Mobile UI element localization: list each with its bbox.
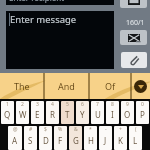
button[interactable]: 9	[120, 101, 135, 124]
button[interactable]: Choose contact	[120, 0, 147, 8]
button[interactable]: 8	[105, 101, 120, 124]
button[interactable]: (	[128, 126, 143, 150]
staticText: F	[58, 135, 63, 146]
button[interactable]: +	[113, 126, 128, 150]
staticText: A	[12, 135, 18, 146]
button[interactable]: #	[23, 126, 38, 150]
staticText: *	[89, 126, 92, 133]
button[interactable]: More suggestions	[131, 73, 150, 99]
staticText: The	[14, 80, 30, 92]
staticText: @	[13, 126, 18, 133]
staticText: $	[44, 126, 47, 133]
button[interactable]: &	[68, 126, 83, 150]
staticText: 160/1	[126, 18, 145, 28]
staticText: H	[88, 135, 94, 146]
staticText: 0	[141, 101, 144, 108]
staticText: S	[28, 135, 33, 146]
button[interactable]: Enter message	[6, 11, 114, 69]
staticText: 7	[96, 101, 99, 108]
staticText: O	[124, 109, 131, 120]
button[interactable]: Of	[89, 73, 131, 99]
button[interactable]: @	[7, 126, 23, 150]
staticText: Of	[105, 80, 116, 92]
staticText: U	[95, 109, 101, 120]
staticText: L	[133, 135, 138, 146]
button[interactable]: 5	[60, 101, 75, 124]
staticText: G	[73, 135, 79, 146]
staticText: T	[65, 109, 70, 120]
staticText: 2	[21, 101, 24, 108]
staticText: 1	[6, 101, 9, 108]
button[interactable]: Attach file	[121, 52, 147, 68]
button[interactable]: -	[98, 126, 113, 150]
staticText: Y	[80, 109, 85, 120]
button[interactable]: $	[38, 126, 53, 150]
button[interactable]: *	[83, 126, 98, 150]
staticText: 3	[36, 101, 39, 108]
staticText: +	[119, 126, 122, 133]
staticText: And	[58, 80, 75, 92]
staticText: Enter recipient	[9, 0, 65, 3]
staticText: (	[135, 126, 137, 133]
button[interactable]: And	[44, 73, 89, 99]
staticText: &	[74, 126, 78, 133]
staticText: 9	[126, 101, 129, 108]
staticText: #	[29, 126, 33, 133]
button[interactable]: 6	[75, 101, 90, 124]
button[interactable]: 2	[15, 101, 30, 124]
staticText: %	[58, 126, 63, 133]
button[interactable]: 0	[135, 101, 150, 124]
staticText: E	[35, 109, 40, 120]
staticText: K	[118, 135, 123, 146]
button[interactable]: Enter recipient	[6, 0, 114, 5]
staticText: P	[140, 109, 145, 120]
button[interactable]: 4	[45, 101, 60, 124]
staticText: D	[43, 135, 49, 146]
staticText: I	[111, 109, 114, 120]
button[interactable]: 1	[0, 101, 15, 124]
button[interactable]: 7	[90, 101, 105, 124]
staticText: Enter message	[10, 13, 77, 26]
button[interactable]: The	[0, 73, 44, 99]
button[interactable]: 3	[30, 101, 45, 124]
staticText: R	[50, 109, 55, 120]
staticText: -	[105, 126, 107, 133]
staticText: 4	[51, 101, 54, 108]
staticText: W	[19, 109, 27, 120]
staticText: J	[104, 135, 107, 146]
button[interactable]: Send message	[120, 30, 147, 45]
button[interactable]: %	[53, 126, 68, 150]
staticText: 5	[66, 101, 69, 108]
staticText: 6	[81, 101, 84, 108]
staticText: Q	[4, 109, 11, 120]
staticText: 8	[111, 101, 114, 108]
